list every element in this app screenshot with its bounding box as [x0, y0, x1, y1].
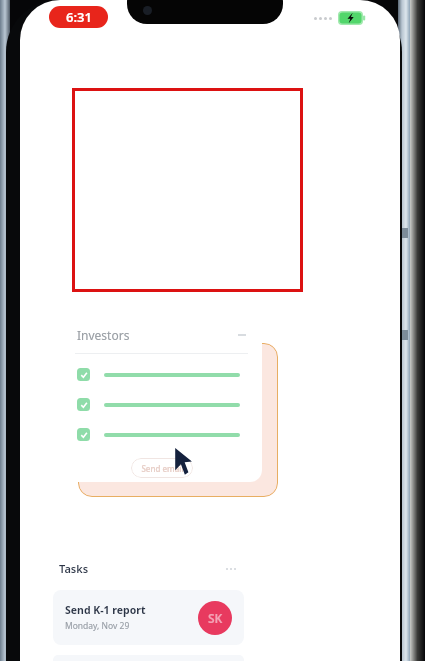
- staticText: Monday, Nov 29: [65, 620, 130, 632]
- button[interactable]: [77, 428, 246, 441]
- button[interactable]: Investors: [61, 313, 262, 482]
- button[interactable]: Tasks: [41, 545, 256, 661]
- staticText: Send email: [141, 463, 184, 474]
- button[interactable]: [77, 398, 246, 411]
- staticText: 6:31: [66, 8, 92, 26]
- button[interactable]: More options: [226, 568, 238, 570]
- staticText: SK: [208, 610, 223, 626]
- button[interactable]: Send email: [131, 458, 193, 478]
- staticText: Send K-1 report: [65, 603, 146, 617]
- button[interactable]: Send K-1 report: [53, 590, 244, 645]
- staticText: Investors: [77, 327, 130, 343]
- staticText: Tasks: [59, 561, 89, 576]
- button[interactable]: [77, 368, 246, 381]
- button[interactable]: 6:31: [49, 6, 108, 28]
